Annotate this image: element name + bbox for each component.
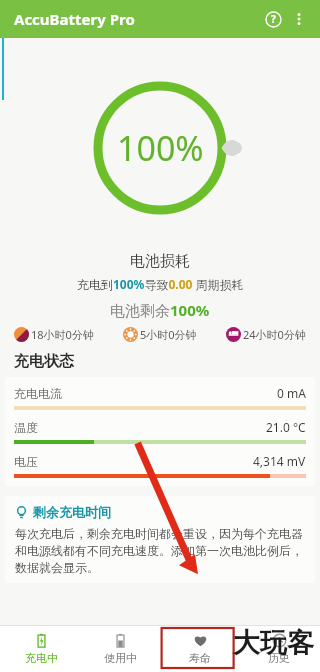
button[interactable]: 历史 <box>241 626 317 672</box>
staticText: 充电电流 <box>14 386 62 401</box>
staticText: 剩余充电时间 <box>33 504 111 520</box>
staticText: 4,314 mV <box>253 453 306 469</box>
button[interactable]: 充电电流 <box>5 377 315 486</box>
staticText: 电压 <box>14 454 38 469</box>
staticText: 充电中 <box>25 651 58 665</box>
staticText: 大玩客 <box>233 626 314 660</box>
button[interactable]: Help <box>260 6 286 32</box>
staticText: 每次充电后，剩余充电时间都会重设，因为每个充电器和电源线都有不同充电速度。添加第… <box>15 526 305 575</box>
staticText: AccuBattery Pro <box>14 9 135 29</box>
staticText: 18小时0分钟 <box>31 327 94 342</box>
button[interactable]: 5小时0分钟 <box>123 327 197 342</box>
staticText: 电池剩余100% <box>110 300 210 320</box>
button[interactable]: More options <box>286 6 312 32</box>
staticText: 寿命 <box>189 651 211 665</box>
button[interactable]: 使用中 <box>82 626 158 672</box>
staticText: 充电状态 <box>14 352 74 371</box>
staticText: 100% <box>117 125 204 171</box>
staticText: ? <box>271 12 276 26</box>
button[interactable]: 24小时0分钟 <box>226 327 306 342</box>
staticText: 0 mA <box>277 385 306 401</box>
staticText: 使用中 <box>104 651 137 665</box>
staticText: 24小时0分钟 <box>243 327 306 342</box>
staticText: 温度 <box>14 420 38 435</box>
staticText: 充电到100%导致0.00 周期损耗 <box>77 276 244 292</box>
button[interactable]: 寿命 <box>162 626 238 672</box>
button[interactable]: 充电中 <box>3 626 79 672</box>
button[interactable]: 剩余充电时间 <box>5 496 315 583</box>
staticText: 电池损耗 <box>130 252 190 271</box>
staticText: 21.0 °C <box>266 419 306 435</box>
staticText: 5小时0分钟 <box>140 327 197 342</box>
button[interactable]: 18小时0分钟 <box>14 327 94 342</box>
staticText: 历史 <box>268 651 290 665</box>
